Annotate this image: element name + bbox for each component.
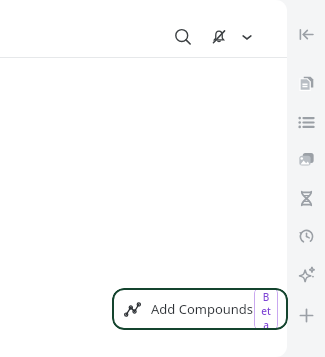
button[interactable]: Notifications off xyxy=(205,23,233,51)
button[interactable]: Search xyxy=(169,23,197,51)
button[interactable]: Add Compounds xyxy=(112,288,288,330)
staticText: Beta xyxy=(260,290,272,328)
button[interactable]: More options xyxy=(235,25,259,49)
button[interactable]: Structures xyxy=(293,185,319,211)
staticText: Add Compounds xyxy=(151,300,254,318)
button[interactable]: Search xyxy=(0,17,267,57)
button[interactable]: Collapse panel xyxy=(293,21,319,47)
button[interactable]: List xyxy=(293,109,319,135)
button[interactable]: Add xyxy=(293,302,319,328)
button[interactable]: Documents xyxy=(293,70,319,96)
button[interactable]: History xyxy=(293,223,319,249)
button[interactable]: Assistant xyxy=(293,261,319,287)
button[interactable]: Images xyxy=(293,146,319,172)
